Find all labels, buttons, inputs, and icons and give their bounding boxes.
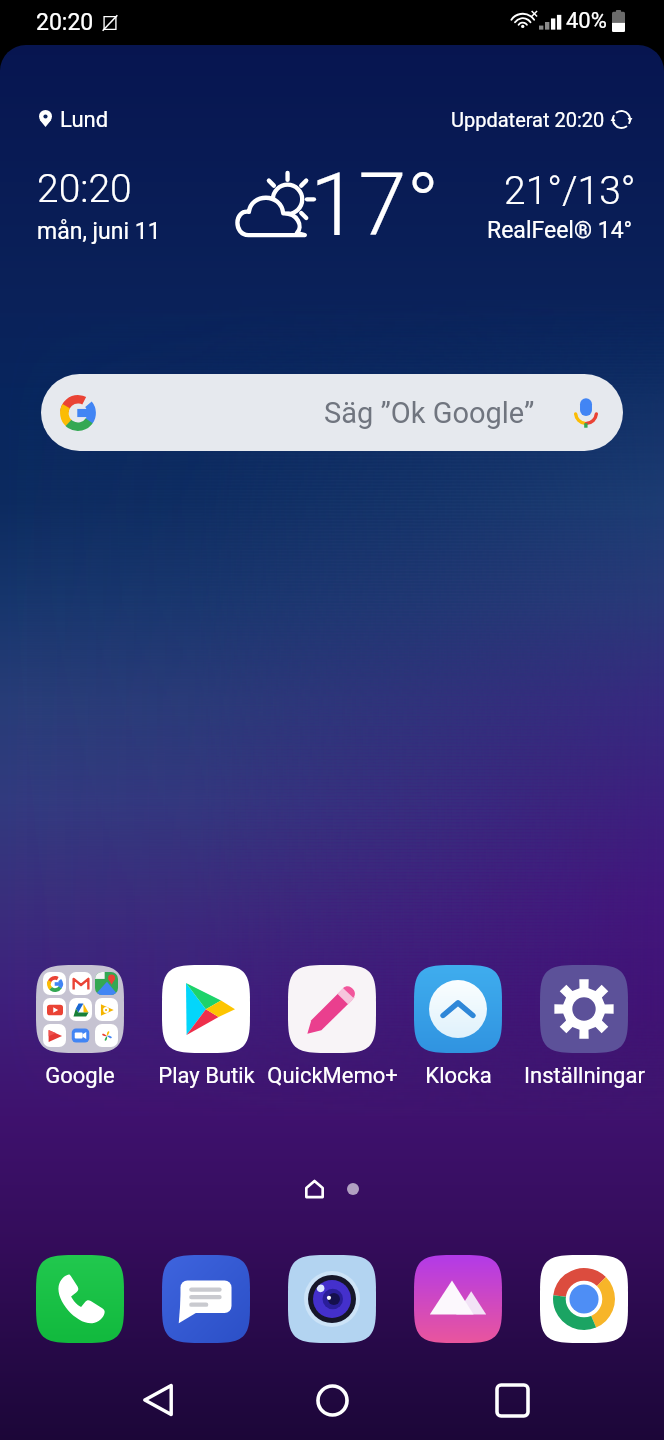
button[interactable]: Phone bbox=[36, 1255, 124, 1343]
staticText: QuickMemo+ bbox=[267, 1063, 398, 1089]
button[interactable]: Recents bbox=[477, 1365, 547, 1435]
button[interactable]: Camera bbox=[288, 1255, 376, 1343]
staticText: Inställningar bbox=[524, 1063, 645, 1089]
button[interactable]: Säg ”Ok Google” bbox=[41, 374, 623, 451]
button[interactable] bbox=[36, 965, 124, 1053]
staticText: Play Butik bbox=[158, 1063, 255, 1089]
button[interactable]: Back bbox=[123, 1365, 193, 1435]
staticText: RealFeel® 14° bbox=[487, 217, 633, 244]
staticText: 21°/13° bbox=[504, 168, 636, 214]
staticText: mån, juni 11 bbox=[37, 218, 161, 245]
button[interactable]: Refresh bbox=[604, 102, 638, 136]
staticText: 17° bbox=[310, 154, 440, 256]
staticText: 40% bbox=[566, 8, 607, 34]
button[interactable]: Lund bbox=[0, 90, 664, 255]
button[interactable] bbox=[540, 965, 628, 1053]
staticText: Klocka bbox=[425, 1063, 492, 1089]
staticText: Lund bbox=[60, 107, 109, 133]
staticText: Säg ”Ok Google” bbox=[324, 396, 535, 430]
staticText: Uppdaterat 20:20 bbox=[451, 108, 605, 131]
button[interactable]: Gallery bbox=[414, 1255, 502, 1343]
button[interactable] bbox=[162, 965, 250, 1053]
button[interactable]: Home bbox=[297, 1365, 367, 1435]
button[interactable] bbox=[288, 965, 376, 1053]
staticText: Google bbox=[45, 1063, 115, 1089]
button[interactable]: Messages bbox=[162, 1255, 250, 1343]
button[interactable] bbox=[414, 965, 502, 1053]
button[interactable]: Chrome bbox=[540, 1255, 628, 1343]
staticText: 20:20 bbox=[36, 9, 94, 36]
staticText: 20:20 bbox=[37, 166, 132, 212]
